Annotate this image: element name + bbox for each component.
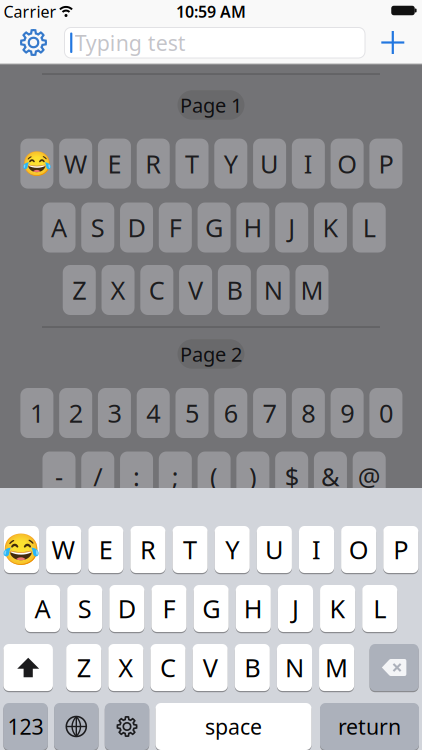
button[interactable]: C — [150, 644, 185, 691]
staticText: H — [243, 211, 262, 244]
button[interactable]: ) — [236, 451, 269, 501]
button[interactable]: J — [275, 202, 308, 252]
button[interactable]: F — [159, 202, 192, 252]
button[interactable]: E — [88, 526, 123, 573]
button[interactable]: H — [236, 585, 271, 632]
button[interactable]: / — [81, 451, 114, 501]
button[interactable]: 😂 — [4, 526, 39, 573]
button[interactable]: C — [140, 265, 173, 315]
button[interactable]: O — [331, 139, 364, 189]
button[interactable]: ( — [198, 451, 231, 501]
button[interactable]: S — [81, 202, 114, 252]
button[interactable]: Delete — [370, 644, 419, 691]
button[interactable]: Typing test — [64, 27, 365, 58]
button[interactable]: P — [383, 526, 418, 573]
button[interactable]: Keyboard settings — [105, 703, 149, 750]
button[interactable]: 0 — [369, 388, 402, 438]
button[interactable]: Shift — [3, 644, 53, 691]
button[interactable]: $ — [275, 451, 308, 501]
button[interactable]: 4 — [137, 388, 170, 438]
button[interactable]: ; — [159, 451, 192, 501]
button[interactable]: Page 1 — [177, 90, 244, 120]
staticText: C — [160, 651, 176, 684]
staticText: Typing test — [75, 29, 186, 57]
button[interactable]: 1 — [20, 388, 53, 438]
button[interactable]: V — [179, 265, 212, 315]
button[interactable]: M — [295, 265, 328, 315]
button[interactable]: Y — [215, 526, 250, 573]
staticText: E — [107, 147, 121, 180]
staticText: F — [169, 211, 182, 244]
button[interactable]: G — [194, 585, 229, 632]
button[interactable]: L — [362, 585, 397, 632]
button[interactable]: P — [369, 139, 402, 189]
button[interactable]: K — [320, 585, 355, 632]
button[interactable]: 7 — [253, 388, 286, 438]
button[interactable]: Page 2 — [177, 339, 244, 369]
staticText: 10:59 AM — [176, 1, 246, 22]
button[interactable]: Y — [214, 139, 247, 189]
button[interactable]: F — [151, 585, 186, 632]
button[interactable]: T — [172, 526, 208, 573]
button[interactable]: B — [218, 265, 251, 315]
button[interactable]: D — [109, 585, 144, 632]
staticText: G — [202, 592, 220, 625]
button[interactable]: L — [353, 202, 386, 252]
button[interactable]: U — [257, 526, 292, 573]
button[interactable]: : — [120, 451, 153, 501]
staticText: U — [260, 147, 279, 180]
button[interactable]: D — [120, 202, 153, 252]
button[interactable]: V — [193, 644, 228, 691]
button[interactable]: space — [155, 703, 311, 750]
staticText: 😂 — [2, 532, 40, 567]
button[interactable]: B — [235, 644, 270, 691]
button[interactable]: - — [42, 451, 75, 501]
button[interactable]: Z — [66, 644, 101, 691]
button[interactable]: U — [253, 139, 286, 189]
button[interactable]: Z — [63, 265, 96, 315]
button[interactable]: 5 — [175, 388, 208, 438]
button[interactable]: 3 — [98, 388, 131, 438]
button[interactable]: 8 — [292, 388, 325, 438]
button[interactable]: Add — [381, 31, 404, 54]
button[interactable]: Settings — [20, 29, 47, 56]
button[interactable]: O — [341, 526, 376, 573]
staticText: space — [205, 712, 262, 741]
button[interactable]: K — [314, 202, 347, 252]
staticText: / — [93, 460, 102, 493]
button[interactable]: W — [46, 526, 81, 573]
button[interactable]: N — [257, 265, 290, 315]
button[interactable]: 😂 — [20, 139, 53, 189]
button[interactable]: T — [175, 139, 208, 189]
button[interactable]: Numbers — [3, 703, 48, 750]
staticText: F — [162, 592, 175, 625]
staticText: N — [264, 273, 283, 307]
button[interactable]: H — [236, 202, 269, 252]
button[interactable]: X — [108, 644, 143, 691]
button[interactable]: W — [59, 139, 92, 189]
staticText: Z — [72, 273, 86, 307]
button[interactable]: A — [25, 585, 60, 632]
button[interactable]: R — [130, 526, 165, 573]
button[interactable]: I — [299, 526, 334, 573]
button[interactable]: Next keyboard — [54, 703, 98, 750]
button[interactable]: 6 — [214, 388, 247, 438]
button[interactable]: 2 — [59, 388, 92, 438]
button[interactable]: R — [137, 139, 170, 189]
button[interactable]: 9 — [331, 388, 364, 438]
button[interactable]: & — [314, 451, 347, 501]
button[interactable]: X — [101, 265, 134, 315]
button[interactable]: A — [42, 202, 75, 252]
button[interactable]: I — [292, 139, 325, 189]
staticText: @ — [358, 460, 381, 493]
button[interactable]: @ — [353, 451, 386, 501]
button[interactable]: E — [98, 139, 131, 189]
button[interactable]: G — [198, 202, 231, 252]
staticText: 0 — [379, 396, 393, 430]
button[interactable]: return — [320, 703, 419, 750]
button[interactable]: J — [278, 585, 313, 632]
button[interactable]: S — [67, 585, 102, 632]
button[interactable]: N — [277, 644, 312, 691]
button[interactable]: M — [319, 644, 354, 691]
staticText: A — [51, 211, 67, 244]
